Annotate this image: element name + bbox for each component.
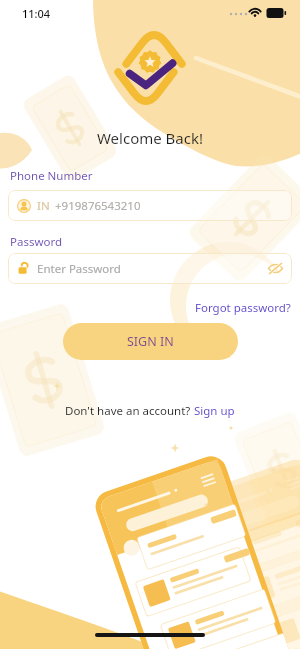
staticText: 11:04 [22,6,51,21]
staticText: Forgot password? [195,300,291,316]
button[interactable]: Enter Password [8,253,292,284]
staticText: Phone Number [10,168,93,184]
other: Show password [268,261,283,276]
staticText: IN [37,198,50,214]
staticText: Enter Password [37,261,121,277]
staticText: SIGN IN [127,333,174,350]
button[interactable]: IN [8,190,292,221]
staticText: Sign up [194,403,235,419]
staticText: Don't have an account? [65,403,194,419]
staticText: +919876543210 [55,198,141,214]
staticText: Welcome Back! [0,128,300,148]
staticText: Password [10,234,63,250]
button[interactable]: Forgot password? [193,298,293,318]
button[interactable]: SIGN IN [63,323,238,360]
button[interactable]: Sign up [194,403,235,419]
